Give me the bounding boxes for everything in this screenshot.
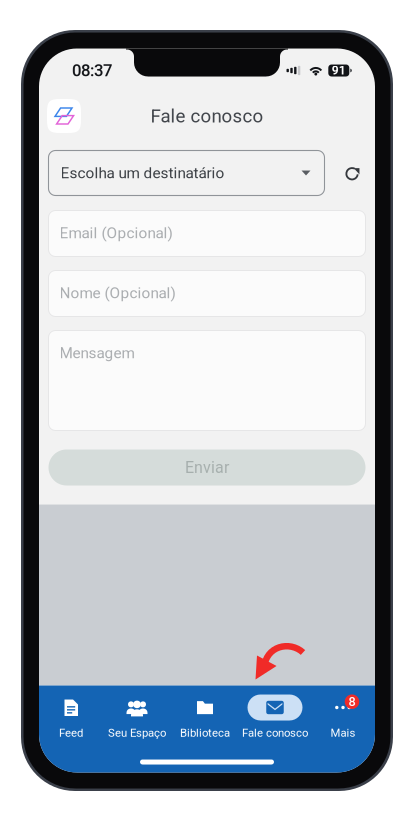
staticText: Nome (Opcional)	[59, 284, 175, 302]
button[interactable]: Feed	[39, 693, 103, 739]
staticText: Escolha um destinatário	[60, 164, 224, 182]
button[interactable]: Biblioteca	[171, 693, 239, 739]
staticText: Feed	[59, 726, 83, 740]
button[interactable]: Início	[47, 99, 81, 133]
button[interactable]: Escolha um destinatário	[48, 150, 324, 195]
button[interactable]: Enviar	[48, 449, 365, 485]
staticText: Mais	[330, 726, 355, 740]
staticText: Email (Opcional)	[59, 224, 172, 242]
button[interactable]: Seu Espaço	[103, 693, 171, 739]
button[interactable]: Mensagem	[48, 330, 365, 430]
staticText: 91	[332, 63, 346, 78]
staticText: Fale conosco	[242, 726, 308, 740]
button[interactable]: Email (Opcional)	[48, 210, 365, 256]
button[interactable]: Nome (Opcional)	[48, 270, 365, 316]
staticText: 08:37	[72, 61, 112, 80]
staticText: Fale conosco	[150, 105, 263, 127]
staticText: 8	[348, 694, 355, 709]
button[interactable]: Fale conosco	[239, 693, 311, 739]
staticText: Biblioteca	[180, 726, 230, 740]
button[interactable]: 8	[311, 693, 375, 739]
staticText: Enviar	[185, 458, 229, 477]
staticText: Seu Espaço	[108, 726, 166, 740]
staticText: Mensagem	[59, 344, 134, 362]
button[interactable]: Atualizar	[339, 150, 365, 195]
